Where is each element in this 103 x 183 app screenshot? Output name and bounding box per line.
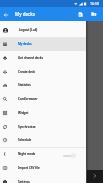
staticText: Create deck: [18, 70, 36, 74]
staticText: Card browser: [18, 97, 38, 101]
staticText: Import CSV file: [18, 166, 40, 170]
button[interactable]: Night mode: [0, 147, 86, 161]
staticText: My decks: [18, 42, 32, 46]
staticText: Statistics: [18, 83, 31, 87]
staticText: Card browser: [18, 97, 38, 101]
staticText: Logout [Luk]: [19, 28, 38, 32]
button[interactable]: Back: [1, 10, 10, 19]
staticText: Schedule: [18, 138, 32, 142]
staticText: Card browser: [18, 97, 38, 101]
staticText: Import CSV file: [18, 166, 40, 170]
button[interactable]: Get shared decks: [0, 51, 86, 65]
staticText: Statistics: [18, 83, 31, 87]
staticText: Create deck: [18, 70, 36, 74]
button[interactable]: Logout [Luk]: [0, 23, 86, 37]
staticText: My decks: [18, 42, 32, 46]
staticText: Schedule: [18, 138, 32, 142]
staticText: My decks: [15, 11, 35, 17]
staticText: Get shared decks: [18, 56, 43, 60]
button[interactable]: Schedule: [0, 133, 86, 147]
staticText: Night mode: [18, 152, 36, 156]
staticText: Logout [Luk]: [19, 28, 38, 32]
staticText: Synchronize: [18, 125, 36, 129]
staticText: Settings: [18, 180, 30, 183]
staticText: Create deck: [18, 70, 36, 74]
staticText: Get shared decks: [18, 56, 43, 60]
staticText: Night mode: [18, 152, 36, 156]
staticText: Synchronize: [18, 125, 36, 129]
button[interactable]: Card browser: [0, 92, 86, 106]
staticText: My decks: [18, 42, 32, 46]
staticText: Statistics: [18, 83, 31, 87]
staticText: Settings: [18, 180, 30, 183]
button[interactable]: My decks: [0, 37, 86, 51]
button[interactable]: Statistics: [0, 78, 86, 92]
button[interactable]: Import CSV file: [0, 161, 86, 175]
staticText: 16:58: [90, 1, 99, 6]
staticText: Widget: [18, 111, 29, 115]
button[interactable]: Synchronize: [0, 120, 86, 134]
button[interactable]: Create deck: [0, 65, 86, 79]
staticText: Widget: [18, 111, 29, 115]
staticText: Logout [Luk]: [19, 28, 38, 32]
staticText: Settings: [18, 180, 30, 183]
staticText: Import CSV file: [18, 166, 40, 170]
staticText: Get shared decks: [18, 56, 43, 60]
button[interactable]: Settings: [0, 175, 86, 183]
button[interactable]: New note: [75, 9, 85, 19]
staticText: Schedule: [18, 138, 32, 142]
button[interactable]: Widget: [0, 106, 86, 120]
staticText: Synchronize: [18, 125, 36, 129]
button[interactable]: Create deck: [89, 9, 99, 19]
staticText: Widget: [18, 111, 29, 115]
staticText: Night mode: [18, 152, 36, 156]
